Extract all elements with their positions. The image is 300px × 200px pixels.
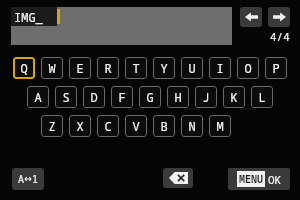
staticText: X	[76, 118, 84, 134]
button[interactable]: S	[55, 86, 77, 108]
staticText: U	[188, 60, 196, 76]
button[interactable]: H	[167, 86, 189, 108]
staticText: K	[230, 89, 238, 105]
staticText: IMG_	[14, 9, 43, 25]
staticText: B	[160, 118, 168, 134]
button[interactable]: A	[27, 86, 49, 108]
staticText: H	[174, 89, 182, 105]
staticText: G	[146, 89, 154, 105]
button[interactable]: W	[41, 57, 63, 79]
button[interactable]: N	[181, 115, 203, 137]
staticText: 4/4	[270, 29, 290, 43]
staticText: 1	[32, 172, 38, 186]
staticText: C	[104, 118, 112, 134]
button[interactable]: V	[125, 115, 147, 137]
button[interactable]: L	[251, 86, 273, 108]
staticText: N	[188, 118, 196, 134]
staticText: A	[34, 89, 42, 105]
staticText: A	[18, 172, 24, 186]
staticText: D	[90, 89, 98, 105]
button[interactable]: Z	[41, 115, 63, 137]
staticText: W	[48, 60, 56, 76]
button[interactable]: E	[69, 57, 91, 79]
button[interactable]: Y	[153, 57, 175, 79]
button[interactable]: P	[265, 57, 287, 79]
button[interactable]: Q	[13, 57, 35, 79]
button[interactable]: A	[12, 168, 44, 190]
button[interactable]: T	[125, 57, 147, 79]
staticText: O	[244, 60, 252, 76]
button[interactable]: X	[69, 115, 91, 137]
button[interactable]: MENU	[228, 168, 290, 190]
button[interactable]: IMG_	[11, 7, 232, 45]
button[interactable]: O	[237, 57, 259, 79]
staticText: Q	[20, 60, 28, 76]
button[interactable]: B	[153, 115, 175, 137]
staticText: V	[132, 118, 140, 134]
button[interactable]: J	[195, 86, 217, 108]
staticText: M	[216, 118, 224, 134]
button[interactable]: Move cursor left	[240, 7, 262, 27]
button[interactable]: Move cursor right	[268, 7, 290, 27]
staticText: OK	[268, 172, 282, 187]
button[interactable]: D	[83, 86, 105, 108]
button[interactable]: K	[223, 86, 245, 108]
button[interactable]: I	[209, 57, 231, 79]
button[interactable]: R	[97, 57, 119, 79]
staticText: Z	[48, 118, 56, 134]
button[interactable]: Backspace	[163, 168, 193, 188]
button[interactable]: U	[181, 57, 203, 79]
staticText: T	[132, 60, 140, 76]
button[interactable]: C	[97, 115, 119, 137]
staticText: L	[258, 89, 266, 105]
staticText: P	[272, 60, 280, 76]
staticText: MENU	[239, 172, 263, 186]
staticText: J	[202, 89, 210, 105]
button[interactable]: F	[111, 86, 133, 108]
staticText: I	[216, 60, 224, 76]
staticText: S	[62, 89, 70, 105]
button[interactable]: G	[139, 86, 161, 108]
staticText: Y	[160, 60, 168, 76]
staticText: F	[118, 89, 126, 105]
button[interactable]: M	[209, 115, 231, 137]
staticText: R	[104, 60, 112, 76]
staticText: E	[76, 60, 84, 76]
